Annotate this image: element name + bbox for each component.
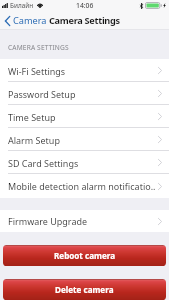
- staticText: Password Setup: [8, 88, 156, 100]
- staticText: Firmware Upgrade: [8, 215, 156, 227]
- staticText: Camera Settings: [49, 14, 120, 27]
- button[interactable]: Delete camera: [3, 279, 166, 300]
- button[interactable]: Password Setup: [0, 82, 169, 105]
- staticText: Alarm Setup: [8, 134, 156, 146]
- button[interactable]: Reboot camera: [3, 245, 166, 266]
- staticText: SD Card Settings: [8, 157, 156, 169]
- staticText: CAMERA SETTINGS: [8, 43, 69, 52]
- staticText: 14:06: [76, 1, 94, 10]
- button[interactable]: Wi-Fi Settings: [0, 59, 169, 82]
- staticText: Reboot camera: [54, 250, 116, 261]
- button[interactable]: Time Setup: [0, 105, 169, 128]
- staticText: Mobile detection alarm notificatio...: [8, 180, 156, 192]
- button[interactable]: Firmware Upgrade: [0, 210, 169, 232]
- button[interactable]: Mobile detection alarm notificatio...: [0, 174, 169, 198]
- staticText: Camera: [13, 14, 47, 27]
- staticText: Wi-Fi Settings: [8, 65, 156, 77]
- button[interactable]: SD Card Settings: [0, 151, 169, 174]
- staticText: Time Setup: [8, 111, 156, 123]
- staticText: Билайн: [10, 1, 34, 10]
- button[interactable]: Alarm Setup: [0, 128, 169, 151]
- staticText: Delete camera: [55, 284, 114, 295]
- button[interactable]: Camera: [0, 14, 49, 27]
